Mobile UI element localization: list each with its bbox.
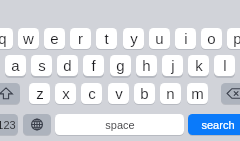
button[interactable]: i: [175, 28, 196, 49]
staticText: i: [184, 30, 188, 47]
staticText: r: [78, 30, 83, 47]
button[interactable]: 123: [0, 114, 18, 135]
button[interactable]: d: [57, 55, 78, 76]
button[interactable]: x: [55, 83, 76, 104]
button[interactable]: b: [134, 83, 155, 104]
staticText: d: [63, 57, 72, 74]
staticText: z: [36, 85, 44, 102]
button[interactable]: space: [55, 114, 184, 135]
staticText: g: [116, 57, 125, 74]
button[interactable]: a: [5, 55, 26, 76]
button[interactable]: z: [29, 83, 50, 104]
button[interactable]: u: [149, 28, 170, 49]
button[interactable]: k: [188, 55, 209, 76]
staticText: h: [142, 57, 151, 74]
button[interactable]: h: [136, 55, 157, 76]
staticText: q: [0, 30, 7, 47]
button[interactable]: n: [160, 83, 181, 104]
button[interactable]: p: [227, 28, 240, 49]
staticText: space: [105, 119, 135, 131]
staticText: o: [207, 30, 216, 47]
button[interactable]: g: [110, 55, 131, 76]
button[interactable]: w: [18, 28, 39, 49]
staticText: y: [130, 30, 138, 47]
button[interactable]: r: [70, 28, 91, 49]
staticText: u: [155, 30, 164, 47]
staticText: w: [23, 30, 34, 47]
staticText: x: [62, 85, 70, 102]
button[interactable]: s: [31, 55, 52, 76]
button[interactable]: f: [83, 55, 104, 76]
staticText: s: [38, 57, 46, 74]
staticText: k: [195, 57, 203, 74]
button[interactable]: Backspace: [221, 83, 240, 104]
staticText: b: [140, 85, 149, 102]
staticText: c: [88, 85, 96, 102]
staticText: a: [11, 57, 20, 74]
staticText: e: [50, 30, 59, 47]
staticText: m: [191, 85, 204, 102]
button[interactable]: y: [123, 28, 144, 49]
button[interactable]: o: [201, 28, 222, 49]
button[interactable]: q: [0, 28, 13, 49]
staticText: f: [91, 57, 96, 74]
staticText: n: [166, 85, 175, 102]
button[interactable]: e: [44, 28, 65, 49]
button[interactable]: m: [187, 83, 208, 104]
staticText: t: [104, 30, 109, 47]
button[interactable]: c: [81, 83, 102, 104]
staticText: l: [223, 57, 227, 74]
staticText: 123: [0, 119, 16, 131]
staticText: j: [171, 57, 175, 74]
staticText: v: [115, 85, 123, 102]
button[interactable]: t: [96, 28, 117, 49]
button[interactable]: j: [162, 55, 183, 76]
button[interactable]: Shift: [0, 83, 20, 104]
button[interactable]: Switch keyboard: [23, 114, 51, 135]
staticText: p: [233, 30, 240, 47]
button[interactable]: v: [108, 83, 129, 104]
staticText: search: [201, 119, 235, 131]
button[interactable]: search: [188, 114, 240, 135]
button[interactable]: l: [214, 55, 235, 76]
